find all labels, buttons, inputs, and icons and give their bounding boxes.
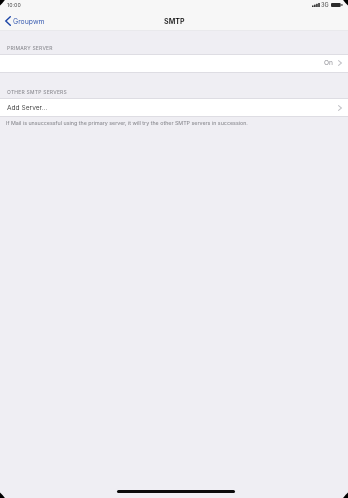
staticText: PRIMARY SERVER: [7, 45, 53, 51]
staticText: SMTP: [164, 17, 185, 26]
other: Cellular signal strength: [312, 3, 320, 7]
button[interactable]: Add Server…: [0, 99, 348, 116]
staticText: If Mail is unsuccessful using the primar…: [6, 120, 248, 126]
button[interactable]: On: [0, 55, 348, 72]
staticText: Add Server…: [7, 104, 48, 112]
staticText: Groupwm: [13, 17, 45, 25]
other: Battery full: [331, 3, 342, 7]
staticText: 3G: [321, 2, 329, 9]
button[interactable]: Back to Groupwm: [5, 14, 45, 31]
staticText: 10:00: [7, 2, 21, 8]
staticText: OTHER SMTP SERVERS: [7, 89, 67, 95]
staticText: On: [324, 59, 333, 67]
